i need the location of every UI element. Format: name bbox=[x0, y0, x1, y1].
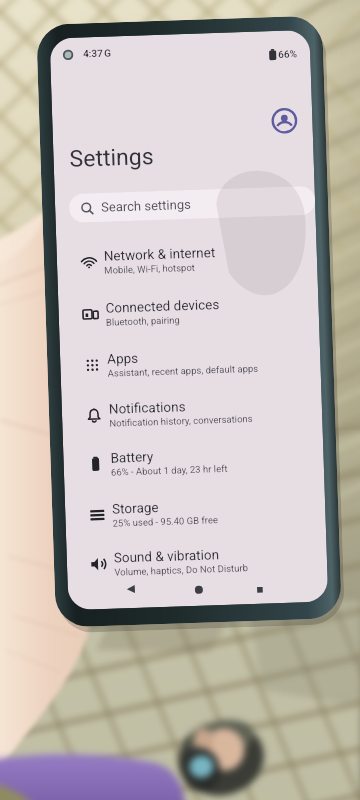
staticText: Volume, haptics, Do Not Disturb bbox=[114, 562, 248, 578]
staticText: G bbox=[104, 47, 111, 60]
staticText: Mobile, Wi-Fi, hotspot bbox=[104, 262, 195, 276]
button[interactable]: Home bbox=[187, 578, 210, 601]
staticText: 66% bbox=[278, 48, 297, 61]
staticText: Battery bbox=[110, 448, 154, 466]
staticText: Connected devices bbox=[105, 296, 220, 316]
button[interactable]: Sound & vibration bbox=[76, 533, 318, 591]
button[interactable]: Battery bbox=[73, 433, 314, 491]
button[interactable]: Connected devices bbox=[68, 283, 309, 341]
staticText: Bluetooth, pairing bbox=[106, 314, 180, 328]
staticText: Settings bbox=[69, 143, 154, 173]
button[interactable]: Network & internet bbox=[66, 231, 308, 289]
staticText: 25% used - 95.40 GB free bbox=[112, 514, 219, 529]
button[interactable]: Notifications bbox=[71, 384, 313, 442]
staticText: Sound & vibration bbox=[113, 546, 220, 566]
staticText: Notifications bbox=[109, 398, 186, 417]
button[interactable]: Apps bbox=[70, 334, 311, 392]
staticText: 4:37 bbox=[83, 48, 103, 60]
staticText: Apps bbox=[107, 350, 138, 367]
staticText: Network & internet bbox=[103, 244, 216, 264]
staticText: Assistant, recent apps, default apps bbox=[107, 363, 259, 379]
button[interactable]: Account bbox=[269, 105, 300, 136]
button[interactable]: Back bbox=[119, 578, 142, 600]
button[interactable]: Recent apps bbox=[249, 578, 271, 601]
button[interactable]: Storage bbox=[75, 484, 316, 542]
staticText: Search settings bbox=[101, 197, 191, 215]
button[interactable]: Search settings bbox=[69, 186, 315, 223]
staticText: Storage bbox=[112, 499, 159, 517]
staticText: Notification history, conversations bbox=[109, 413, 253, 429]
staticText: 66% - About 1 day, 23 hr left bbox=[111, 463, 228, 478]
